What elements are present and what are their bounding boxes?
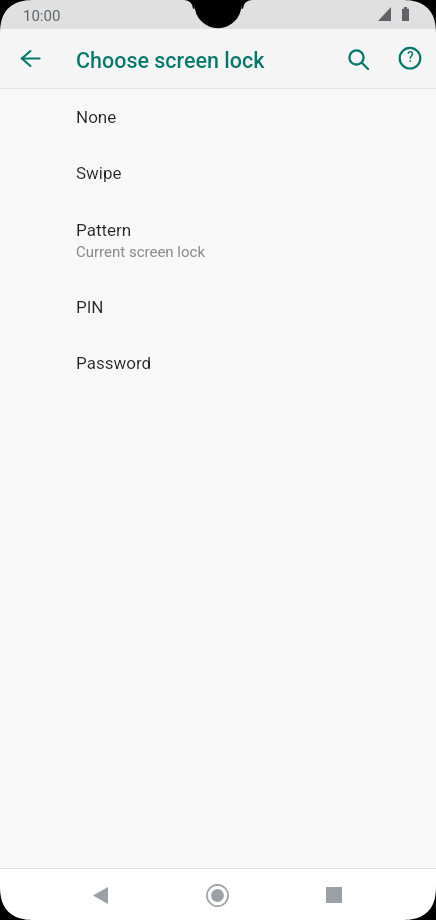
button[interactable]: Help: [386, 34, 434, 82]
button[interactable]: Swipe: [0, 145, 436, 201]
staticText: Password: [76, 353, 152, 373]
staticText: Current screen lock: [76, 243, 206, 261]
staticText: None: [76, 107, 117, 127]
staticText: ?: [407, 49, 414, 65]
staticText: 10:00: [23, 7, 61, 25]
button[interactable]: Search: [332, 31, 380, 79]
staticText: Swipe: [76, 163, 122, 183]
button[interactable]: Password: [0, 335, 436, 391]
button[interactable]: Pattern: [0, 201, 436, 279]
button[interactable]: None: [0, 89, 436, 145]
button[interactable]: Home: [196, 874, 238, 916]
button[interactable]: Back: [79, 874, 121, 916]
staticText: PIN: [76, 297, 104, 317]
staticText: Choose screen lock: [76, 48, 265, 73]
button[interactable]: Recents: [313, 874, 355, 916]
staticText: Pattern: [76, 220, 132, 240]
button[interactable]: PIN: [0, 279, 436, 335]
button[interactable]: Back: [6, 34, 54, 82]
